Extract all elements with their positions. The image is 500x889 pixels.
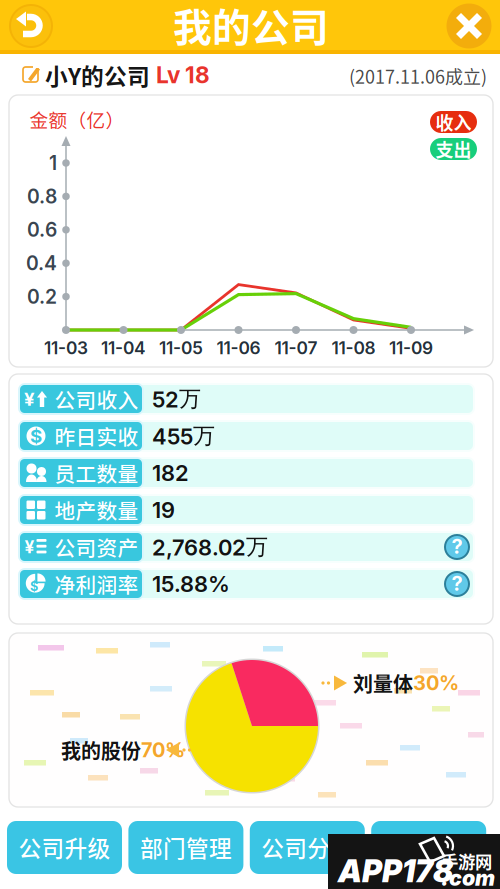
button[interactable]: 员工管理 [0,0,500,889]
staticText: 员工数量 [54,458,138,488]
staticText: 公司升级 [18,831,110,863]
staticText: 52万 [152,385,201,413]
staticText: 员工管理 [383,831,475,863]
staticText: 455万 [152,422,215,450]
staticText: 地产数量 [54,495,138,525]
staticText: 0.2 [27,285,57,308]
staticText: APP178 [338,852,453,889]
staticText: 0.4 [26,251,57,275]
staticText: 支出 [435,136,471,162]
staticText: 金额（亿） [29,105,124,132]
button[interactable]: Close [0,0,500,889]
staticText: 182 [152,460,189,486]
button[interactable]: Help [0,0,500,889]
staticText: 公司收入 [54,384,138,414]
button[interactable]: 收入 [0,0,500,889]
button[interactable]: 公司升级 [0,0,500,889]
staticText: 刘量体 [353,668,413,697]
staticText: 11-05 [159,337,203,358]
button[interactable]: 支出 [0,0,500,889]
staticText: 70% [141,738,185,762]
staticText: 11-04 [101,337,146,358]
staticText: ? [451,534,462,559]
staticText: ? [451,571,462,596]
staticText: Lv 18 [156,61,210,89]
staticText: (2017.11.06成立) [349,63,487,89]
staticText: 手游网 [441,848,492,874]
staticText: 0.8 [27,185,57,208]
staticText: 部门管理 [140,831,232,863]
staticText: 我的公司 [173,0,329,53]
staticText: 11-03 [44,337,88,358]
staticText: 30% [413,671,459,695]
staticText: 我的股份 [61,735,141,764]
staticText: 19 [152,497,175,523]
staticText: 2,768.02万 [152,533,268,561]
button[interactable]: 部门管理 [0,0,500,889]
staticText: ¥ [24,388,35,410]
staticText: 收入 [435,109,471,135]
button[interactable]: Help [0,0,500,889]
staticText: 净利润率 [54,569,138,599]
staticText: $ [30,425,42,447]
staticText: ¥ [24,536,34,557]
staticText: 公司资产 [54,532,138,562]
staticText: 昨日实收 [54,421,138,451]
button[interactable]: Edit company name [0,0,500,889]
staticText: 11-07 [274,337,317,358]
staticText: 11-08 [331,337,375,358]
staticText: $ [30,579,38,594]
staticText: 1 [49,151,57,175]
button[interactable]: 公司分红 [0,0,500,889]
staticText: .com [441,865,495,889]
staticText: 15.88% [152,571,230,597]
staticText: 11-06 [216,337,260,358]
staticText: 小Y的公司 [45,59,150,91]
button[interactable]: Back [0,0,500,889]
staticText: 0.6 [27,218,57,241]
staticText: 公司分红 [261,831,353,863]
staticText: 11-09 [389,337,433,358]
